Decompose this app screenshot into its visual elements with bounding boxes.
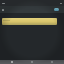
button[interactable]: Navigate up (1, 8, 5, 12)
button[interactable]: Active filter (54, 8, 59, 11)
button[interactable] (2, 18, 57, 25)
button[interactable]: Search (22, 60, 42, 64)
button[interactable]: Profile (42, 60, 62, 64)
button[interactable]: Home (2, 60, 22, 64)
